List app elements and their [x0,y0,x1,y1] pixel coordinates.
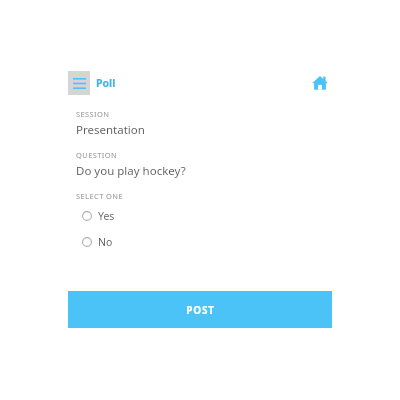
staticText: SESSION [76,109,110,119]
button[interactable]: No [76,231,332,253]
staticText: QUESTION [76,150,118,160]
staticText: POST [186,303,215,317]
staticText: Yes [98,209,115,223]
button[interactable]: Yes [76,205,332,227]
button[interactable]: Home [308,71,332,95]
button[interactable]: Open navigation menu [68,71,90,95]
button[interactable]: POST [68,291,332,328]
button[interactable]: Poll [96,76,116,90]
staticText: SELECT ONE [76,191,123,201]
staticText: Presentation [76,122,145,138]
staticText: Do you play hockey? [76,163,186,179]
staticText: No [98,235,113,249]
